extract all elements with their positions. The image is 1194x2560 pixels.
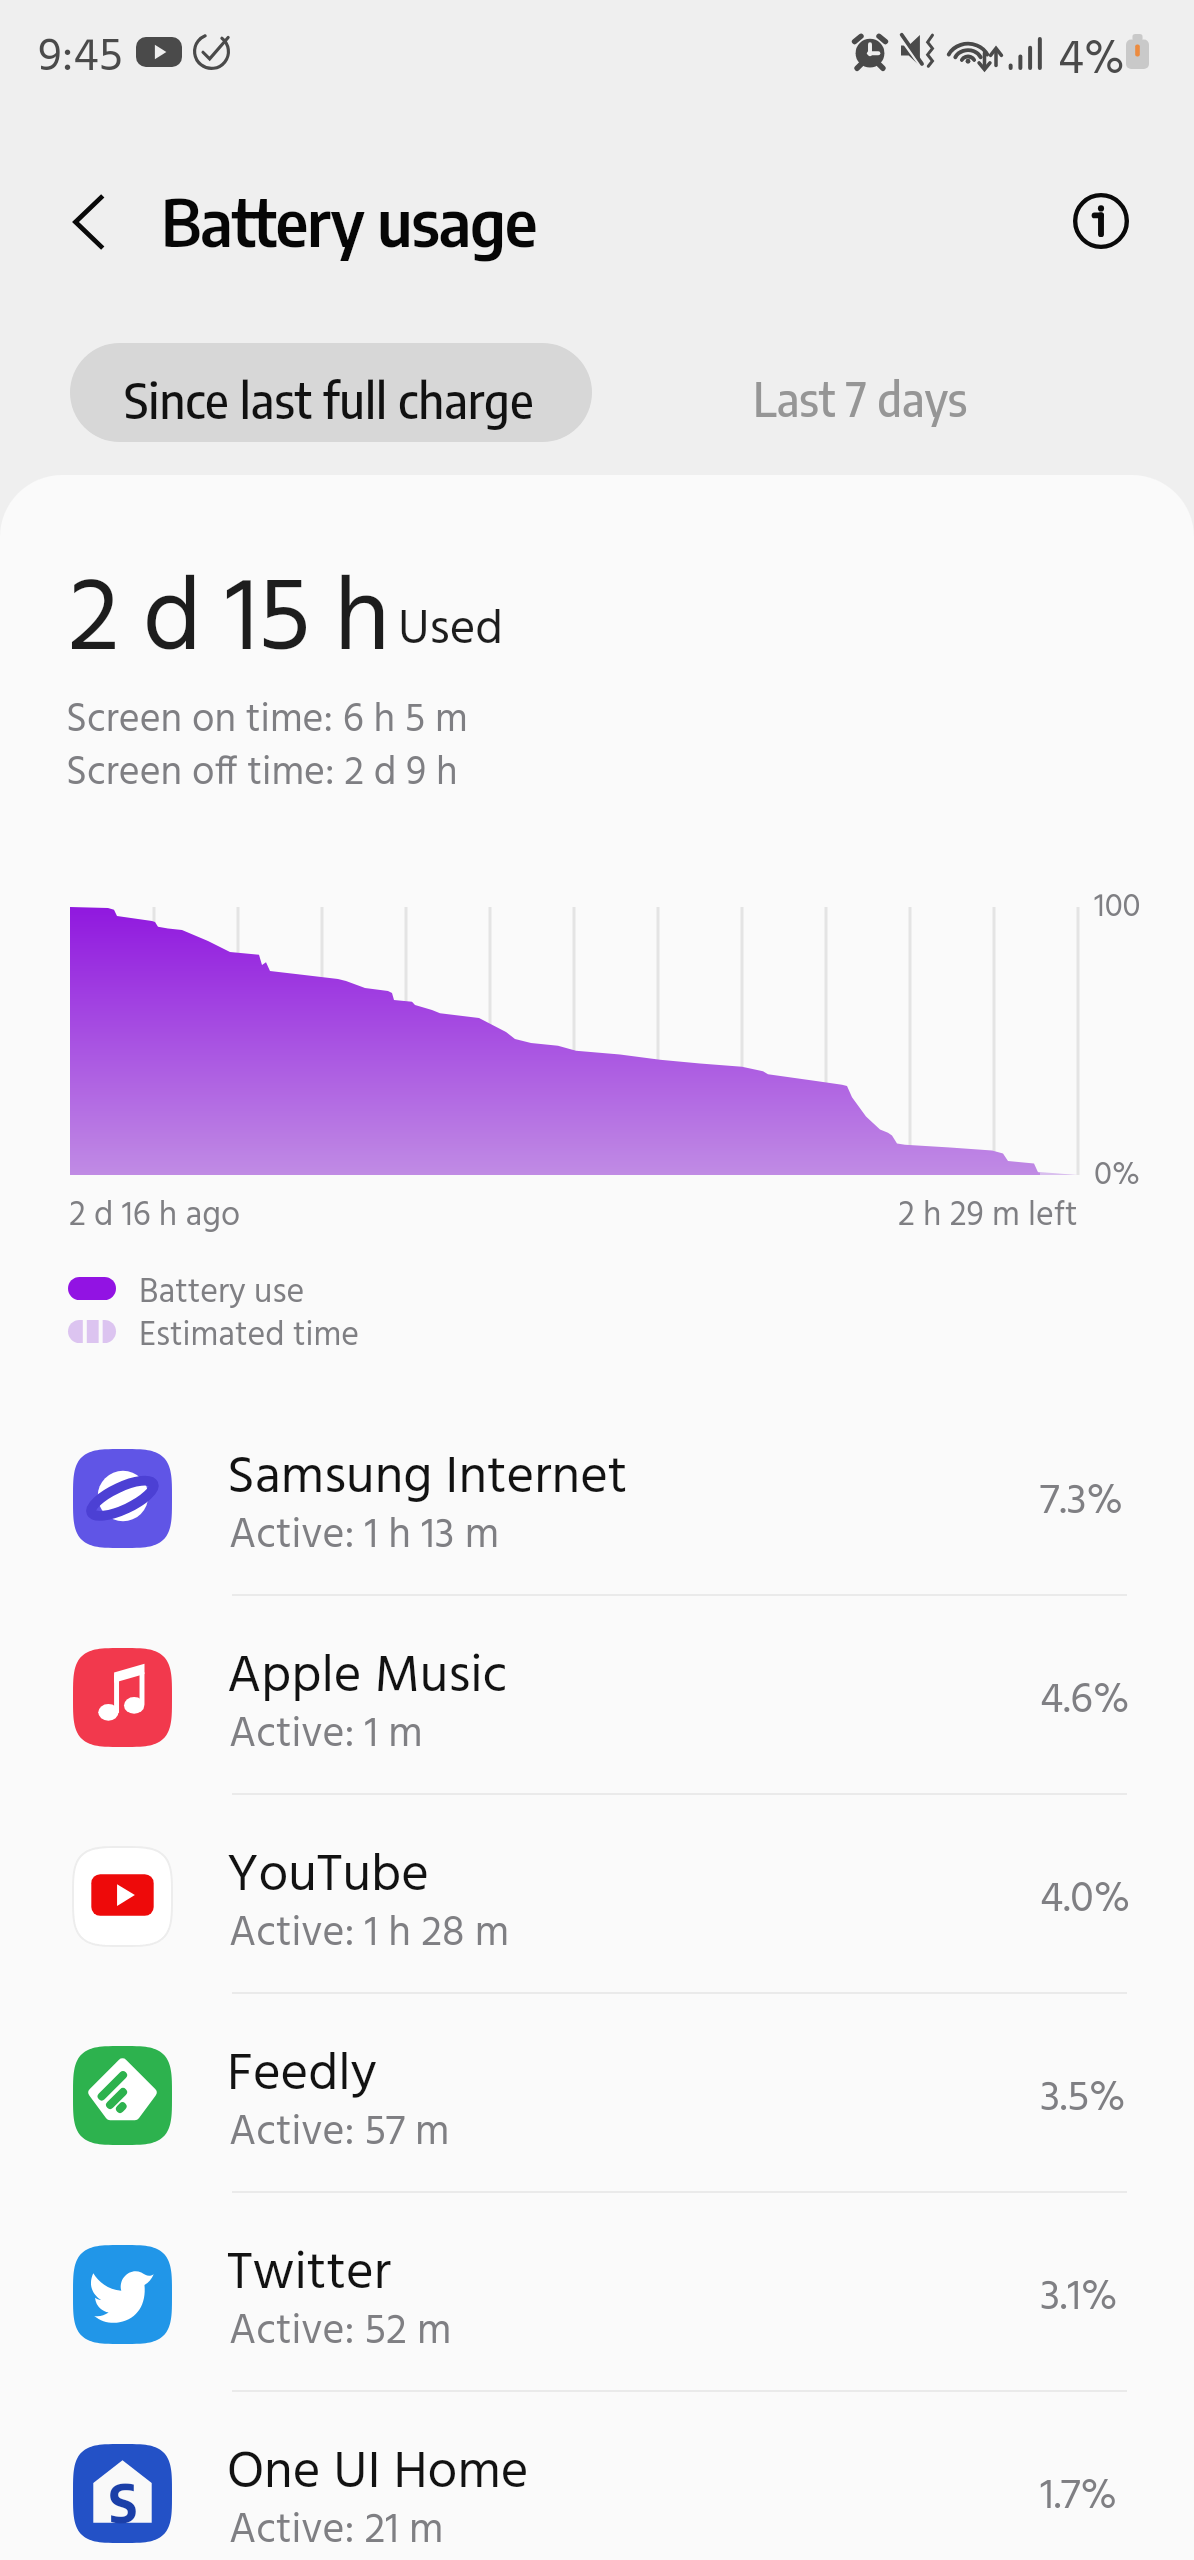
staticText: Feedly	[227, 2033, 377, 2118]
button[interactable]: Navigate up	[46, 178, 134, 266]
button[interactable]: YouTube	[0, 1794, 1194, 1993]
button[interactable]: Last 7 days	[700, 349, 1020, 448]
staticText: Active: 52 m	[229, 2299, 452, 2366]
staticText: Apple Music	[227, 1635, 508, 1720]
staticText: 0%	[1094, 1149, 1140, 1202]
staticText: S	[109, 2469, 137, 2534]
button[interactable]: Twitter	[0, 2192, 1194, 2391]
staticText: Used	[398, 591, 504, 669]
staticText: Active: 1 h 28 m	[229, 1901, 510, 1968]
staticText: Estimated time	[139, 1309, 359, 1363]
staticText: 2 d 15 h	[68, 539, 390, 706]
staticText: Screen off time: 2 d 9 h	[66, 742, 458, 806]
staticText: 4.0%	[1040, 1866, 1131, 1935]
staticText: YouTube	[227, 1834, 429, 1919]
staticText: Battery use	[139, 1266, 305, 1320]
staticText: 3.5%	[1040, 2065, 1126, 2134]
staticText: Screen on time: 6 h 5 m	[66, 689, 468, 753]
staticText: Active: 21 m	[229, 2498, 444, 2560]
staticText: 7.3%	[1040, 1468, 1123, 1537]
staticText: Battery usage	[161, 180, 537, 261]
staticText: Last 7 days	[753, 370, 968, 427]
staticText: 4.6%	[1040, 1667, 1130, 1736]
staticText: Since last full charge	[124, 370, 534, 430]
staticText: 1.7%	[1040, 2463, 1117, 2532]
button[interactable]: Since last full charge	[70, 343, 592, 442]
staticText: 2 h 29 m left	[898, 1189, 1078, 1243]
button[interactable]: Information	[1057, 177, 1145, 265]
staticText: Active: 1 h 13 m	[229, 1503, 500, 1570]
staticText: Active: 1 m	[229, 1702, 423, 1769]
staticText: One UI Home	[227, 2431, 529, 2516]
button[interactable]: Samsung Internet	[0, 1396, 1194, 1595]
staticText: 4%	[1058, 22, 1125, 99]
button[interactable]: S	[0, 2391, 1194, 2560]
staticText: Active: 57 m	[229, 2100, 450, 2167]
button[interactable]: Feedly	[0, 1993, 1194, 2192]
staticText: Samsung Internet	[227, 1436, 628, 1521]
button[interactable]: Apple Music	[0, 1595, 1194, 1794]
staticText: Twitter	[227, 2232, 391, 2317]
staticText: 9:45	[38, 20, 123, 95]
staticText: 100	[1094, 881, 1141, 934]
staticText: 2 d 16 h ago	[69, 1189, 240, 1243]
staticText: 3.1%	[1040, 2264, 1118, 2333]
